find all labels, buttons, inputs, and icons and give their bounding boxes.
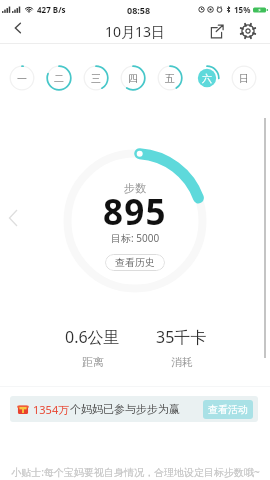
button[interactable]: 四 (118, 63, 148, 93)
staticText: 查看历史 (115, 256, 155, 269)
button[interactable]: 五 (155, 63, 185, 93)
button[interactable]: 查看历史 (105, 254, 165, 271)
staticText: 10月13日 (105, 22, 166, 41)
button[interactable]: 一 (7, 63, 37, 93)
staticText: 895 (103, 188, 167, 236)
staticText: 距离 (82, 355, 104, 369)
staticText: 15% (234, 4, 251, 15)
button[interactable]: 1354万 (10, 396, 258, 422)
button[interactable]: 日 (229, 63, 259, 93)
staticText: 消耗 (171, 355, 193, 369)
staticText: 0.6公里 (65, 326, 120, 348)
button[interactable]: Previous (5, 208, 21, 228)
staticText: 个妈妈已参与步步为赢 (70, 402, 180, 416)
staticText: 日 (239, 72, 249, 85)
button[interactable]: Share (201, 17, 231, 45)
staticText: 小贴士:每个宝妈要视自身情况，合理地设定目标步数哦~ (11, 465, 260, 479)
staticText: 二 (54, 72, 64, 85)
staticText: 目标: 5000 (111, 231, 160, 245)
staticText: 一 (17, 72, 27, 85)
button[interactable]: 查看活动 (203, 400, 253, 419)
staticText: 1354万 (33, 402, 70, 417)
button[interactable]: Settings (233, 17, 263, 45)
staticText: 查看活动 (208, 403, 248, 416)
staticText: 步数 (124, 181, 146, 195)
button[interactable]: 三 (81, 63, 111, 93)
staticText: 三 (91, 72, 101, 85)
staticText: 五 (165, 72, 175, 85)
staticText: 08:58 (127, 4, 151, 16)
staticText: 427 B/s (37, 4, 66, 15)
staticText: 35千卡 (156, 326, 207, 348)
staticText: 六 (202, 72, 212, 85)
button[interactable]: Back (0, 14, 36, 42)
button[interactable]: 二 (44, 63, 74, 93)
staticText: 四 (128, 72, 138, 85)
button[interactable]: 六 (192, 63, 222, 93)
